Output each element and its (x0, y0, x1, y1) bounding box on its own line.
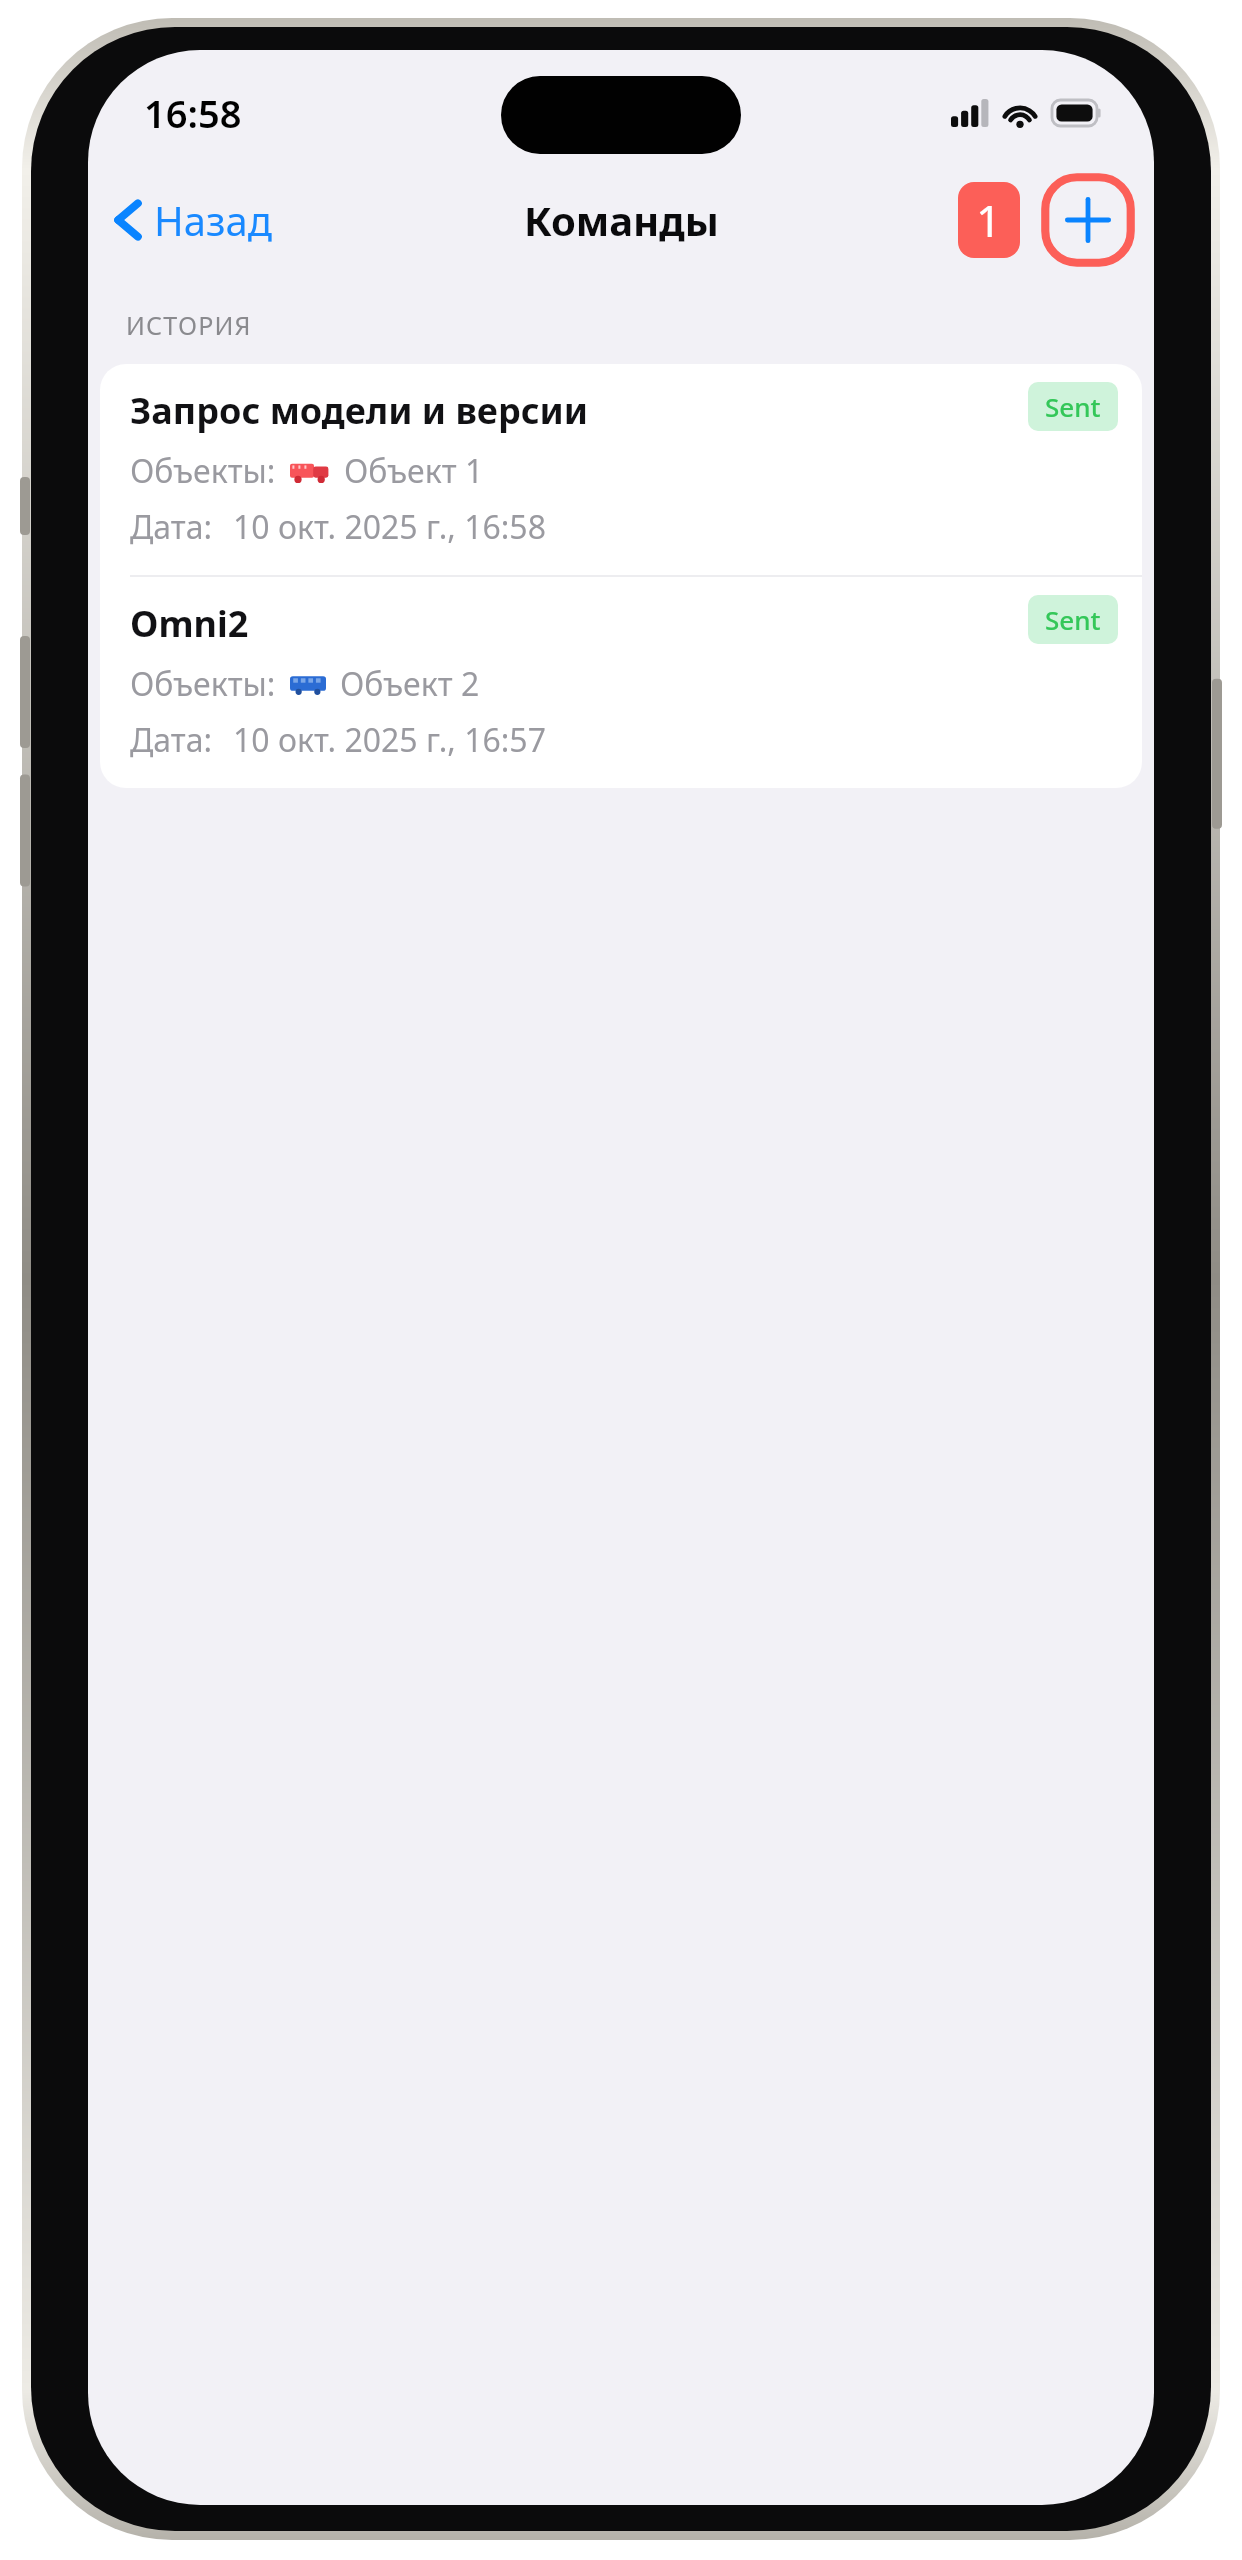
staticText: 16:58 (144, 87, 242, 139)
staticText: Объект 1 (344, 449, 484, 493)
staticText: Объекты: (130, 662, 276, 706)
staticText: Запрос модели и версии (130, 386, 589, 435)
staticText: Объект 2 (340, 662, 480, 706)
staticText: Объекты: (130, 449, 276, 493)
button[interactable]: Запрос модели и версии (100, 364, 1142, 575)
staticText: 10 окт. 2025 г., 16:58 (233, 505, 546, 549)
button[interactable]: Add command (1040, 172, 1136, 268)
staticText: Назад (154, 193, 272, 247)
button[interactable]: Omni2 (100, 577, 1142, 788)
staticText: Команды (524, 193, 719, 247)
staticText: Дата: (130, 718, 213, 762)
staticText: Sent (1045, 602, 1101, 637)
staticText: Sent (1045, 389, 1101, 424)
staticText: 10 окт. 2025 г., 16:57 (233, 718, 546, 762)
button[interactable]: Назад (88, 185, 288, 255)
staticText: 1 (976, 190, 1002, 250)
staticText: Omni2 (130, 599, 249, 648)
staticText: ИСТОРИЯ (126, 308, 252, 342)
staticText: Дата: (130, 505, 213, 549)
